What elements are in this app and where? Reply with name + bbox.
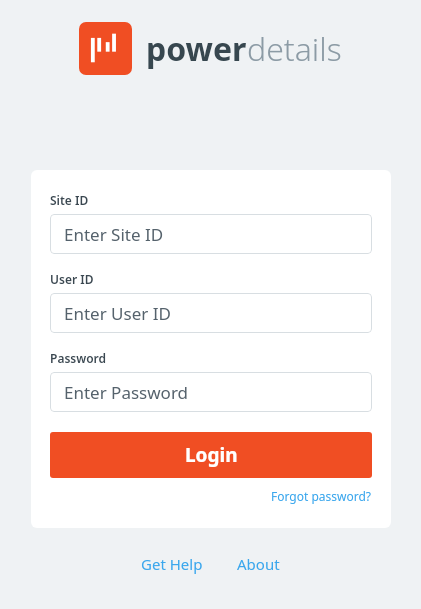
button[interactable]: Enter Site ID — [50, 214, 372, 254]
button[interactable]: Forgot password? — [271, 486, 372, 506]
staticText: Password — [50, 350, 107, 366]
staticText: Login — [185, 442, 238, 468]
staticText: Get Help — [141, 554, 203, 574]
button[interactable]: Get Help — [137, 550, 207, 578]
staticText: power — [146, 27, 247, 71]
staticText: details — [247, 27, 342, 71]
button[interactable]: About — [233, 550, 284, 578]
staticText: Enter Password — [64, 381, 189, 404]
button[interactable]: Enter User ID — [50, 293, 372, 333]
staticText: Enter Site ID — [64, 223, 164, 246]
staticText: Site ID — [50, 192, 89, 208]
staticText: Enter User ID — [64, 302, 171, 325]
button[interactable]: Enter Password — [50, 372, 372, 412]
staticText: User ID — [50, 271, 94, 287]
staticText: About — [237, 554, 280, 574]
staticText: Forgot password? — [271, 488, 372, 504]
button[interactable]: Login — [50, 432, 372, 478]
